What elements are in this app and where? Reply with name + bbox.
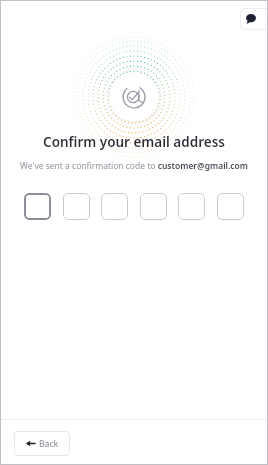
button[interactable]: Verification code digit xyxy=(178,193,205,220)
button[interactable]: Verification code digit xyxy=(24,193,51,220)
staticText: Confirm your email address xyxy=(43,133,225,151)
button[interactable]: Back xyxy=(14,431,70,456)
button[interactable]: Verification code digit xyxy=(63,193,90,220)
button[interactable]: Verification code digit xyxy=(140,193,167,220)
button[interactable]: Open chat support xyxy=(240,8,268,30)
button[interactable]: Verification code digit xyxy=(101,193,128,220)
staticText: Back xyxy=(39,438,59,450)
button[interactable]: Verification code digit xyxy=(217,193,244,220)
staticText: We've sent a confirmation code to custom… xyxy=(20,160,248,172)
